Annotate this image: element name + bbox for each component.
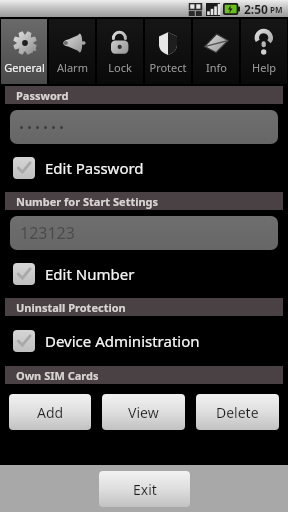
button[interactable]: Protect <box>145 19 191 84</box>
staticText: Lock <box>108 60 132 75</box>
staticText: Help <box>252 60 276 75</box>
staticText: Edit Password <box>45 158 144 178</box>
staticText: Info <box>206 60 227 75</box>
button[interactable]: View <box>102 394 185 430</box>
button[interactable]: Lock <box>97 19 143 84</box>
button[interactable]: Device Administration <box>0 326 288 356</box>
button[interactable]: Edit Number <box>0 259 288 289</box>
staticText: View <box>128 403 159 422</box>
staticText: Own SIM Cards <box>16 368 99 383</box>
staticText: 2:50 <box>244 1 268 17</box>
button[interactable]: Info <box>193 19 239 84</box>
staticText: Device Administration <box>45 331 200 351</box>
staticText: Password <box>16 88 69 103</box>
staticText: PM <box>270 4 283 15</box>
button[interactable]: Edit Password <box>0 153 288 183</box>
button[interactable] <box>10 110 278 144</box>
button[interactable]: 123123 <box>10 216 278 250</box>
staticText: Add <box>37 403 64 422</box>
button[interactable]: Exit <box>99 471 190 507</box>
staticText: General <box>4 60 45 75</box>
button[interactable]: Help <box>241 19 287 84</box>
staticText: 123123 <box>20 222 75 244</box>
staticText: Number for Start Settings <box>16 194 159 209</box>
staticText: Delete <box>216 403 259 422</box>
staticText: Alarm <box>57 60 88 75</box>
button[interactable]: General <box>1 19 47 84</box>
staticText: Exit <box>133 480 157 499</box>
button[interactable]: Delete <box>196 394 279 430</box>
button[interactable]: Add <box>9 394 91 430</box>
staticText: Protect <box>149 60 187 75</box>
staticText: Uninstall Protection <box>16 300 126 315</box>
button[interactable]: Alarm <box>49 19 95 84</box>
staticText: Edit Number <box>45 264 135 284</box>
